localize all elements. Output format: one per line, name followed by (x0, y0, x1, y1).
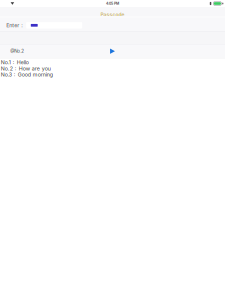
staticText: No.2 : How are you (1, 65, 51, 72)
staticText: Passcode (100, 12, 124, 18)
staticText: No.3 : Good morning (1, 71, 53, 78)
button[interactable]: Play (107, 46, 118, 57)
staticText: @No.2 (10, 48, 24, 54)
button[interactable]: Passcode entry field (26, 22, 82, 28)
staticText: 4:05 PM (106, 1, 119, 6)
staticText: Enter : (6, 22, 23, 29)
staticText: No.1 : Hello (1, 59, 29, 66)
